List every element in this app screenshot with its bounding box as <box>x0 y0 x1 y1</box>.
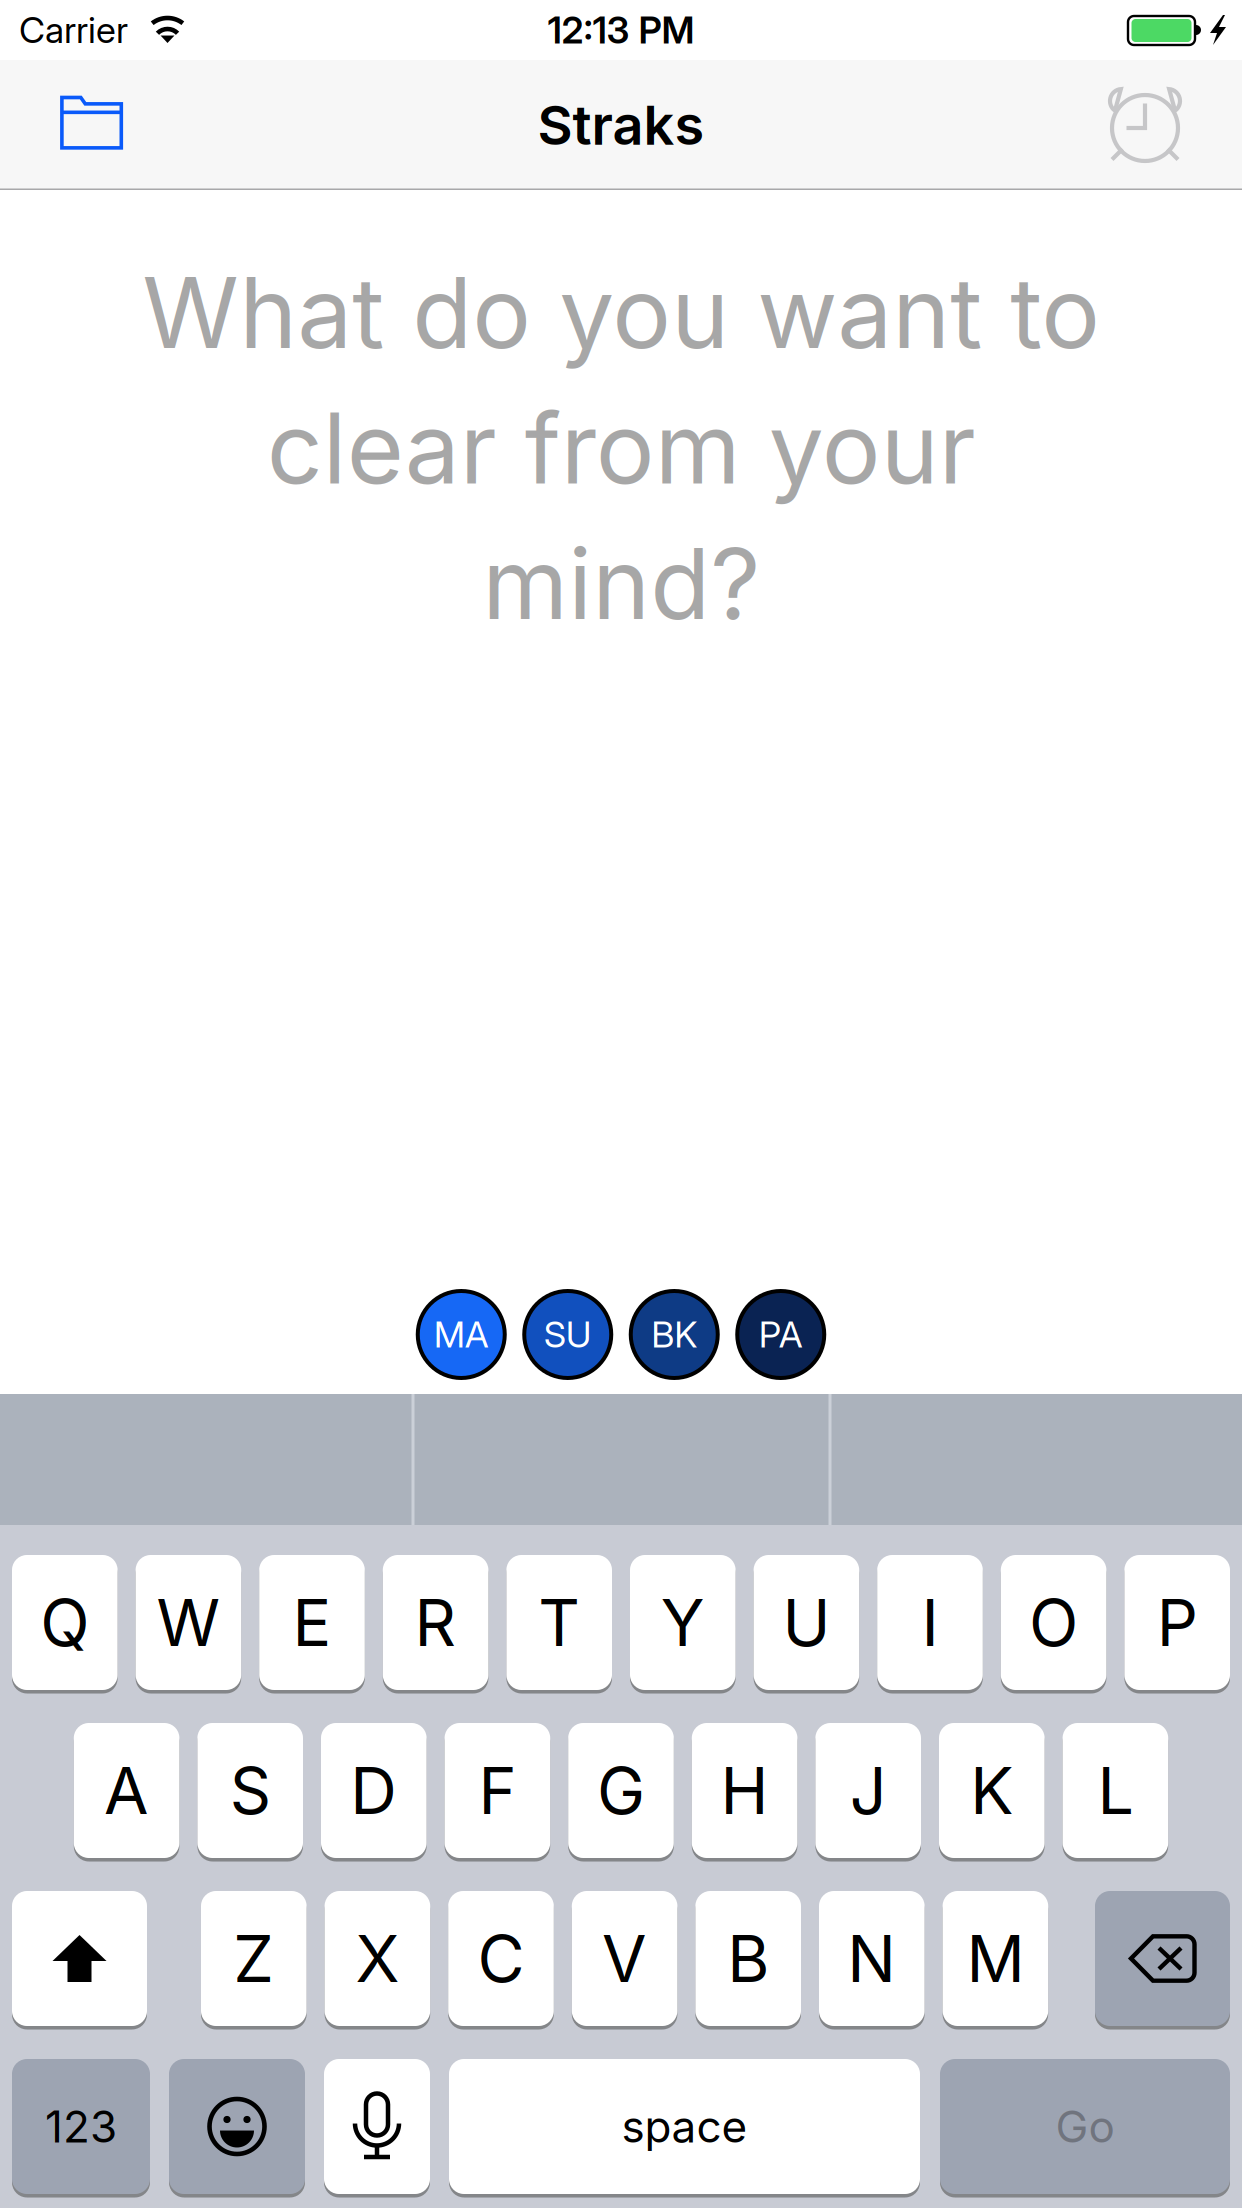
button[interactable]: space <box>449 2057 920 2196</box>
button[interactable]: I <box>877 1553 983 1692</box>
staticText: B <box>727 1919 769 1997</box>
staticText: N <box>847 1919 896 1997</box>
staticText: T <box>538 1583 580 1661</box>
staticText: PA <box>759 1313 803 1356</box>
staticText: V <box>602 1919 647 1997</box>
staticText: D <box>350 1751 397 1829</box>
button[interactable]: Y <box>630 1553 736 1692</box>
staticText: Carrier <box>19 8 128 52</box>
button[interactable]: Z <box>201 1889 307 2028</box>
button[interactable]: R <box>383 1553 488 1692</box>
button[interactable]: G <box>568 1721 674 1860</box>
staticText: G <box>597 1751 645 1829</box>
button[interactable]: PA <box>735 1289 826 1380</box>
staticText: R <box>415 1583 457 1661</box>
button[interactable]: U <box>754 1553 859 1692</box>
button[interactable]: A <box>74 1721 179 1860</box>
button[interactable]: X <box>325 1889 430 2028</box>
button[interactable]: D <box>321 1721 427 1860</box>
button[interactable]: H <box>692 1721 797 1860</box>
button[interactable]: K <box>939 1721 1045 1860</box>
button[interactable]: T <box>506 1553 612 1692</box>
button[interactable]: V <box>572 1889 677 2028</box>
staticText: O <box>1029 1583 1078 1661</box>
staticText: X <box>355 1919 399 1997</box>
staticText: 123 <box>45 2100 117 2153</box>
button[interactable]: SU <box>522 1289 613 1380</box>
button[interactable]: S <box>197 1721 303 1860</box>
button[interactable]: MA <box>416 1289 507 1380</box>
button[interactable]: N <box>819 1889 925 2028</box>
staticText: S <box>230 1751 271 1829</box>
staticText: H <box>721 1751 769 1829</box>
button[interactable]: L <box>1063 1721 1168 1860</box>
staticText: Z <box>233 1919 274 1997</box>
staticText: Q <box>40 1583 89 1661</box>
staticText: W <box>156 1583 220 1661</box>
staticText: MA <box>434 1313 489 1356</box>
staticText: Go <box>1055 2100 1114 2153</box>
staticText: K <box>970 1751 1013 1829</box>
staticText: J <box>850 1751 887 1829</box>
staticText: space <box>621 2100 747 2153</box>
staticText: Y <box>661 1583 705 1661</box>
staticText: A <box>104 1751 149 1829</box>
button[interactable]: Emoji <box>169 2057 305 2196</box>
staticText: Straks <box>537 92 704 158</box>
button[interactable]: BK <box>629 1289 720 1380</box>
staticText: BK <box>651 1313 697 1356</box>
button[interactable]: J <box>815 1721 921 1860</box>
button[interactable]: Go <box>940 2057 1230 2196</box>
button[interactable]: Q <box>12 1553 118 1692</box>
staticText: M <box>966 1919 1024 1997</box>
button[interactable]: F <box>445 1721 550 1860</box>
button[interactable]: M <box>943 1889 1048 2028</box>
button[interactable]: P <box>1124 1553 1230 1692</box>
button[interactable]: O <box>1001 1553 1106 1692</box>
staticText: What do you want to clear from your mind… <box>142 253 1100 643</box>
button[interactable]: Set reminder <box>1085 67 1205 183</box>
staticText: I <box>921 1583 938 1661</box>
button[interactable]: Shift <box>12 1889 147 2028</box>
staticText: SU <box>544 1313 592 1356</box>
staticText: L <box>1097 1751 1133 1829</box>
button[interactable]: Numbers <box>12 2057 150 2196</box>
staticText: 12:13 PM <box>547 8 694 52</box>
button[interactable]: Delete <box>1095 1889 1230 2028</box>
staticText: F <box>478 1751 516 1829</box>
button[interactable]: W <box>136 1553 241 1692</box>
button[interactable]: Folders <box>32 65 152 181</box>
staticText: E <box>292 1583 331 1661</box>
staticText: C <box>477 1919 524 1997</box>
button[interactable]: C <box>448 1889 554 2028</box>
button[interactable]: B <box>695 1889 801 2028</box>
staticText: U <box>782 1583 830 1661</box>
button[interactable]: Dictation <box>324 2057 430 2196</box>
button[interactable]: E <box>259 1553 365 1692</box>
staticText: P <box>1157 1583 1198 1661</box>
